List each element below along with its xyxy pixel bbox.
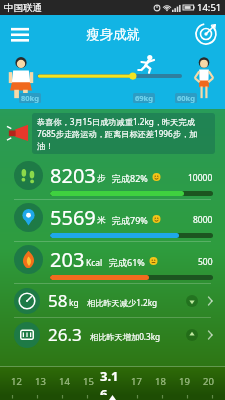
button[interactable]: 12 [5,367,28,395]
staticText: 17 [131,375,142,388]
staticText: 完成79% [112,214,148,226]
staticText: 相比昨天减少1.2kg [87,297,158,308]
button[interactable]: 26.3 [0,318,225,351]
button[interactable]: 18 [148,367,172,395]
staticText: 14:51 [197,1,222,14]
staticText: 69kg [135,93,153,103]
staticText: 80kg [21,93,39,103]
staticText: kg [69,297,79,309]
button[interactable]: 19 [172,367,196,395]
staticText: 203 [50,246,85,273]
staticText: 13 [35,375,46,388]
staticText: 60kg [177,93,195,103]
staticText: 3.16 [100,367,124,395]
staticText: 米 [97,215,106,226]
staticText: 500 [198,256,213,268]
staticText: 18 [155,375,166,388]
staticText: 完成82% [112,172,148,184]
button[interactable]: 58 [0,284,225,317]
staticText: 中国联通 [4,2,42,14]
button[interactable]: 20 [196,367,220,395]
staticText: 步 [97,173,106,184]
staticText: 14 [59,375,70,388]
button[interactable]: 5569 [0,200,225,241]
staticText: 58 [48,289,68,312]
staticText: 10000 [188,172,213,184]
staticText: 恭喜你，3月15日成功减重1.2kg，昨天完成7685步走路运动，距离目标还差1… [37,116,210,151]
button[interactable]: 203 [0,242,225,283]
button[interactable]: Menu [7,21,33,47]
button[interactable]: 13 [28,367,52,395]
staticText: 完成61% [109,256,145,268]
staticText: Kcal [86,257,103,269]
button[interactable]: 15 [76,367,100,395]
staticText: 5569 [50,204,96,231]
staticText: 26.3 [48,323,82,346]
button[interactable]: 8203 [0,158,225,199]
staticText: 相比昨天增加0.3kg [90,331,161,342]
staticText: 20 [203,375,214,388]
staticText: 8203 [50,162,96,189]
button[interactable]: Goal [193,21,219,47]
staticText: 19 [179,375,190,388]
button[interactable]: 14 [52,367,76,395]
staticText: 15 [83,375,94,388]
button[interactable]: 3.16 [100,367,124,395]
button[interactable]: 17 [124,367,148,395]
staticText: 12 [11,375,22,388]
staticText: 8000 [193,214,213,226]
staticText: 瘦身成就 [86,26,140,43]
